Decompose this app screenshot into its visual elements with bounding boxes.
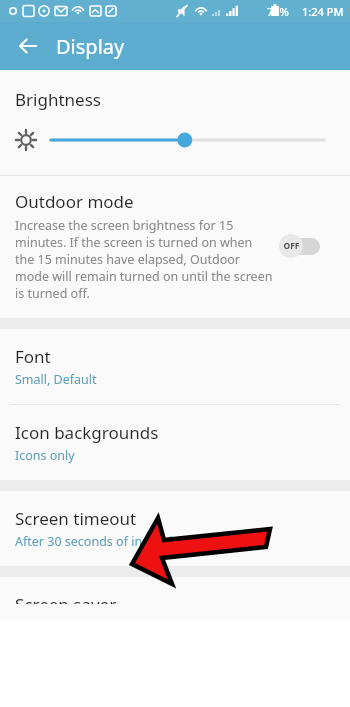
button[interactable]: Outdoor mode	[0, 176, 350, 318]
button[interactable]: OFF	[279, 233, 323, 259]
staticText: 78%	[267, 4, 289, 19]
staticText: Outdoor mode	[15, 190, 134, 213]
other: Brightness	[15, 129, 37, 151]
button[interactable]: Back	[8, 26, 48, 66]
staticText: Screen saver	[15, 593, 117, 604]
button[interactable]: Screen timeout	[0, 491, 350, 566]
staticText: Font	[15, 345, 51, 368]
staticText: Small, Default	[15, 371, 97, 388]
button[interactable]: Font	[0, 329, 350, 404]
staticText: Display	[56, 33, 125, 60]
button[interactable]: Brightness	[0, 70, 350, 175]
button[interactable]: Screen saver	[0, 577, 350, 620]
staticText: 1:24 PM	[302, 4, 344, 19]
staticText: Icons only	[15, 447, 75, 464]
staticText: Increase the screen brightness for 15 mi…	[15, 217, 273, 302]
button[interactable]: Icon backgrounds	[0, 405, 350, 480]
staticText: Screen timeout	[15, 507, 137, 530]
staticText: Brightness	[15, 88, 101, 111]
staticText: OFF	[283, 240, 300, 252]
staticText: Icon backgrounds	[15, 421, 159, 444]
staticText: After 30 seconds of inactivity.	[15, 533, 187, 550]
